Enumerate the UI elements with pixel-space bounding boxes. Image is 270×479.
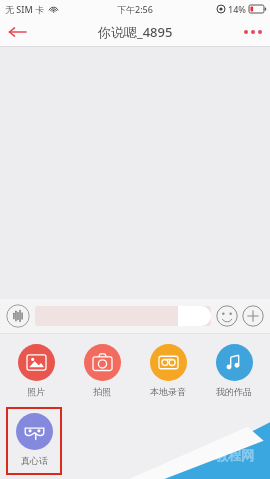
button[interactable]: 更多功能 (242, 305, 264, 327)
button[interactable]: 语音 (6, 304, 30, 328)
staticText: 真心话 (21, 455, 48, 466)
staticText: 无 SIM 卡 (5, 3, 45, 15)
staticText: 14% (228, 3, 246, 15)
button[interactable]: 我的作品 (204, 344, 264, 397)
button[interactable]: 返回 (0, 18, 34, 46)
staticText: 你说嗯_4895 (98, 23, 173, 41)
button[interactable]: 照片 (6, 344, 66, 397)
staticText: 下午2:56 (117, 3, 153, 15)
button[interactable]: 本地录音 (138, 344, 198, 397)
button[interactable]: 真心话 (8, 409, 60, 473)
button[interactable] (35, 306, 211, 326)
button[interactable]: 表情 (216, 305, 238, 327)
staticText: 照片 (27, 386, 45, 397)
staticText: 拍照 (93, 386, 111, 397)
button[interactable]: 拍照 (72, 344, 132, 397)
staticText: 本地录音 (150, 386, 186, 397)
button[interactable]: 更多 (236, 18, 270, 46)
staticText: 我的作品 (216, 386, 252, 397)
staticText: 教程网 (215, 447, 254, 463)
